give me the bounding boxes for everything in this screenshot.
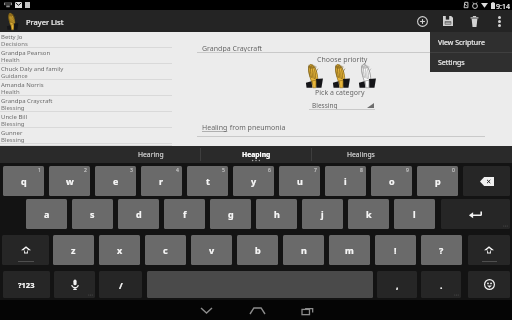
staticText: .	[440, 279, 443, 291]
button[interactable]: /	[99, 271, 142, 298]
staticText: 7	[314, 167, 317, 174]
staticText: from pneumonia	[228, 123, 286, 133]
button[interactable]: Grandpa Craycraft	[0, 96, 180, 112]
button[interactable]: Save	[436, 10, 460, 32]
button[interactable]: x	[99, 235, 140, 265]
button[interactable]: Amy and Pearl	[0, 144, 180, 146]
button[interactable]: i	[325, 166, 366, 196]
button[interactable]: m	[329, 235, 370, 265]
button[interactable]: Priority 3	[356, 64, 377, 88]
staticText: Amy and Pearl	[1, 145, 42, 147]
button[interactable]: Betty Jo	[0, 32, 180, 48]
staticText: 1	[38, 167, 41, 174]
staticText: l	[413, 208, 416, 220]
button[interactable]: .	[421, 271, 461, 298]
button[interactable]: q	[3, 166, 44, 196]
button[interactable]: k	[348, 199, 389, 229]
staticText: i	[344, 175, 347, 187]
button[interactable]: Home	[237, 300, 277, 320]
staticText: y	[251, 175, 257, 187]
button[interactable]: Chuck Daly and family	[0, 64, 180, 80]
button[interactable]: c	[145, 235, 186, 265]
button[interactable]: j	[302, 199, 343, 229]
staticText: Healing	[202, 123, 228, 133]
button[interactable]: b	[237, 235, 278, 265]
button[interactable]: y	[233, 166, 274, 196]
button[interactable]: More options	[488, 10, 510, 32]
staticText: a	[44, 208, 50, 220]
button[interactable]: Settings	[430, 52, 512, 72]
staticText: 4	[176, 167, 179, 174]
button[interactable]: View Scripture	[430, 32, 512, 52]
button[interactable]: p	[417, 166, 458, 196]
staticText: Health	[1, 88, 20, 96]
button[interactable]: Uncle Bill	[0, 112, 180, 128]
button[interactable]: ?123	[3, 271, 50, 298]
button[interactable]: Recent apps	[287, 300, 327, 320]
button[interactable]: Priority 2	[330, 64, 351, 88]
button[interactable]: u	[279, 166, 320, 196]
staticText: j	[321, 208, 324, 220]
staticText: Blessing	[1, 136, 25, 144]
staticText: p	[435, 175, 441, 187]
staticText: Health	[1, 56, 20, 64]
button[interactable]: r	[141, 166, 182, 196]
button[interactable]: ,	[377, 271, 417, 298]
button[interactable]: e	[95, 166, 136, 196]
button[interactable]: Add	[410, 10, 434, 32]
button[interactable]: Heaping	[201, 146, 311, 163]
button[interactable]: z	[53, 235, 94, 265]
staticText: e	[113, 175, 119, 187]
button[interactable]: Grandpa Pearson	[0, 48, 180, 64]
staticText: Pick a category	[315, 88, 365, 98]
button[interactable]: ?	[421, 235, 462, 265]
button[interactable]: d	[118, 199, 159, 229]
button[interactable]: g	[210, 199, 251, 229]
button[interactable]: w	[49, 166, 90, 196]
staticText: Amanda Norris	[1, 81, 44, 89]
staticText: c	[163, 244, 168, 256]
button[interactable]: Emoji	[468, 271, 510, 298]
button[interactable]: t	[187, 166, 228, 196]
button[interactable]: Backspace	[463, 166, 510, 196]
staticText: ?123	[18, 280, 35, 290]
button[interactable]: n	[283, 235, 324, 265]
staticText: 5	[222, 167, 225, 174]
staticText: f	[183, 208, 187, 220]
button[interactable]: !	[375, 235, 416, 265]
button[interactable]: Blessing	[309, 98, 375, 110]
button[interactable]: Amanda Norris	[0, 80, 180, 96]
staticText: w	[66, 175, 74, 187]
staticText: /	[119, 279, 123, 291]
button[interactable]: Delete	[462, 10, 486, 32]
staticText: 0	[452, 167, 455, 174]
button[interactable]: Healings	[312, 146, 512, 163]
button[interactable]: Shift	[468, 235, 510, 265]
staticText: m	[345, 244, 354, 256]
button[interactable]: f	[164, 199, 205, 229]
button[interactable]: Voice input	[54, 271, 95, 298]
button[interactable]: Enter	[441, 199, 510, 229]
button[interactable]: v	[191, 235, 232, 265]
staticText: ,	[396, 279, 399, 291]
button[interactable]: l	[394, 199, 435, 229]
staticText: Healings	[347, 150, 375, 159]
button[interactable]: a	[26, 199, 67, 229]
button[interactable]: Healing	[197, 121, 485, 132]
staticText: Grandpa Craycraft	[202, 44, 263, 54]
button[interactable]: o	[371, 166, 412, 196]
button[interactable]: Grandpa Craycraft	[197, 42, 485, 52]
button[interactable]: Hearing	[0, 146, 200, 163]
staticText: x	[117, 244, 123, 256]
button[interactable]: Shift	[2, 235, 49, 265]
button[interactable]: Gunner	[0, 128, 180, 144]
button[interactable]: Prayer List	[0, 10, 60, 32]
staticText: z	[71, 244, 76, 256]
button[interactable]: s	[72, 199, 113, 229]
button[interactable]: Back	[186, 300, 226, 320]
button[interactable]: Priority 1	[303, 64, 324, 88]
button[interactable]: h	[256, 199, 297, 229]
staticText: Betty Jo	[1, 33, 23, 41]
